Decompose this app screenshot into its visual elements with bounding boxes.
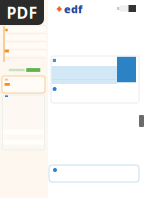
button[interactable]: Scroll handle <box>139 115 144 127</box>
button[interactable]: Information <box>49 165 139 182</box>
staticText: edf <box>64 2 82 16</box>
staticText: PDF <box>6 2 37 23</box>
